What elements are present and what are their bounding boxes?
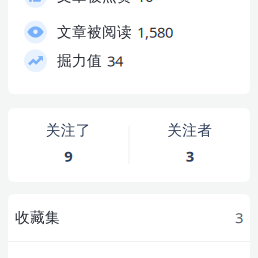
staticText: 34 [107, 51, 123, 70]
staticText: 3 [186, 146, 194, 166]
button[interactable]: 关注了 [8, 108, 128, 182]
staticText: 关注了 [46, 121, 91, 139]
staticText: 16 [137, 0, 153, 6]
staticText: 文章被点赞 [57, 0, 132, 5]
button[interactable]: 文章被阅读 [8, 18, 250, 46]
button[interactable]: 关注者 [129, 108, 250, 182]
staticText: 9 [64, 146, 72, 166]
staticText: 收藏集 [15, 208, 60, 226]
staticText: 文章被阅读 [57, 23, 132, 41]
button[interactable]: 掘力值 [8, 46, 250, 75]
button[interactable]: 文章被点赞 [8, 0, 250, 11]
staticText: 关注者 [167, 121, 212, 139]
staticText: 1,580 [137, 22, 173, 42]
button[interactable]: 收藏集 [8, 194, 250, 241]
staticText: 掘力值 [57, 52, 102, 70]
staticText: 3 [235, 208, 243, 227]
